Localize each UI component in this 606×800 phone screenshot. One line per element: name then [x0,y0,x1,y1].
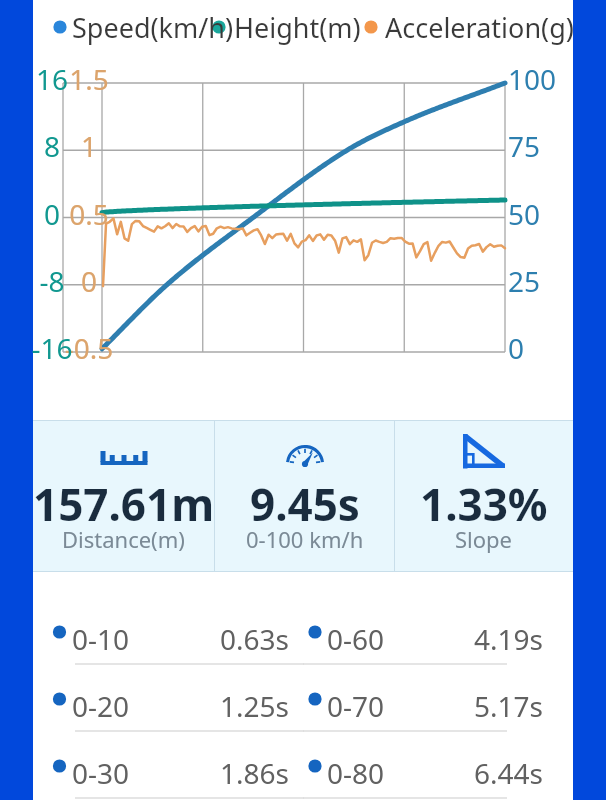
staticText: 1 [49,127,129,165]
button[interactable]: 0-70 [303,683,573,750]
button[interactable]: Distance(m) [33,421,214,571]
staticText: 0 [508,329,578,367]
staticText: 1.5 [49,60,129,98]
staticText: Distance(m) [62,524,185,554]
staticText: 0-10 [72,620,130,658]
button[interactable]: 0-10 [33,616,303,683]
staticText: 0.63s [189,620,289,658]
staticText: Height(m) [234,9,361,46]
other: Slope [461,435,507,471]
button[interactable]: 0-20 [33,683,303,750]
staticText: 100 [508,60,578,98]
staticText: 1.33% [420,474,548,534]
staticText: 6.44s [443,754,543,792]
staticText: Speed(km/h) [72,9,234,46]
staticText: 157.61m [33,474,214,534]
staticText: -8 [12,262,92,300]
staticText: 5.17s [443,687,543,725]
button[interactable]: 0-30 [33,750,303,800]
staticText: 0-30 [72,754,130,792]
button[interactable]: Slope [395,421,573,571]
button[interactable]: 0-80 [303,750,573,800]
staticText: 0 [49,262,129,300]
staticText: 0-80 [327,754,385,792]
staticText: 25 [508,262,578,300]
other: 0-100 km/h [282,435,328,471]
button[interactable]: 0-60 [303,616,573,683]
staticText: -0.5 [49,329,129,367]
staticText: 0.5 [49,195,129,233]
staticText: 4.19s [443,620,543,658]
staticText: 50 [508,195,578,233]
button[interactable]: 0-100 km/h [215,421,394,571]
staticText: -16 [12,329,92,367]
staticText: 0-70 [327,687,385,725]
staticText: 8 [12,127,92,165]
staticText: 75 [508,127,578,165]
staticText: 1.25s [189,687,289,725]
staticText: 0 [12,195,92,233]
staticText: 16 [12,60,92,98]
staticText: 1.86s [189,754,289,792]
staticText: 0-60 [327,620,385,658]
other: Distance(m) [101,435,147,471]
staticText: 0-20 [72,687,130,725]
staticText: 0-100 km/h [246,524,364,554]
staticText: Slope [455,524,513,554]
staticText: Acceleration(g) [385,9,574,46]
staticText: 9.45s [250,474,360,534]
